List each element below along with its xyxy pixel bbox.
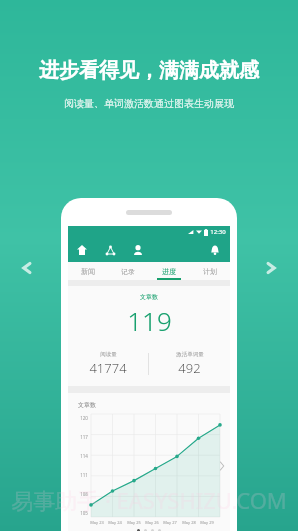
button[interactable] <box>137 529 140 531</box>
staticText: 108 <box>80 491 88 497</box>
staticText: May 24 <box>108 520 122 525</box>
staticText: May 28 <box>182 520 196 525</box>
staticText: 进步看得见，满满成就感 <box>39 58 259 83</box>
staticText: 阅读量 <box>100 351 117 358</box>
staticText: 12:30 <box>210 228 226 236</box>
button[interactable]: Next <box>258 255 284 281</box>
staticText: May 27 <box>163 520 177 525</box>
button[interactable]: Next chart <box>215 459 229 473</box>
button[interactable] <box>158 529 161 531</box>
staticText: 文章数 <box>78 401 96 409</box>
staticText: 激活单词量 <box>176 351 204 358</box>
button[interactable]: Notifications <box>208 243 222 257</box>
staticText: May 25 <box>127 520 141 525</box>
staticText: 阅读量、单词激活数通过图表生动展现 <box>64 97 234 110</box>
button[interactable]: 新闻 <box>68 262 108 280</box>
staticText: 新闻 <box>81 267 95 276</box>
staticText: 记录 <box>121 267 135 276</box>
button[interactable]: 计划 <box>189 262 230 280</box>
button[interactable]: Home <box>75 243 89 257</box>
staticText: May 29 <box>200 520 214 525</box>
staticText: 492 <box>178 359 201 377</box>
button[interactable]: Previous <box>14 255 40 281</box>
staticText: 易事助手 · EASYSHIZU.COM <box>11 485 287 515</box>
staticText: May 26 <box>145 520 159 525</box>
button[interactable]: Network <box>103 243 117 257</box>
staticText: 41774 <box>89 359 127 377</box>
button[interactable] <box>144 529 147 531</box>
button[interactable]: 进度 <box>148 262 189 280</box>
staticText: 文章数 <box>140 293 158 301</box>
staticText: 进度 <box>162 267 176 276</box>
staticText: 计划 <box>203 267 217 276</box>
button[interactable]: 阅读量 <box>68 351 148 377</box>
staticText: 120 <box>80 415 88 421</box>
staticText: May 23 <box>90 520 104 525</box>
staticText: 117 <box>80 434 88 440</box>
staticText: 105 <box>80 510 88 516</box>
button[interactable] <box>151 529 154 531</box>
staticText: 114 <box>80 453 88 459</box>
button[interactable]: 记录 <box>108 262 148 280</box>
staticText: 111 <box>80 472 88 478</box>
staticText: 119 <box>127 303 172 338</box>
button[interactable]: Profile <box>131 243 145 257</box>
button[interactable]: 激活单词量 <box>149 351 230 377</box>
